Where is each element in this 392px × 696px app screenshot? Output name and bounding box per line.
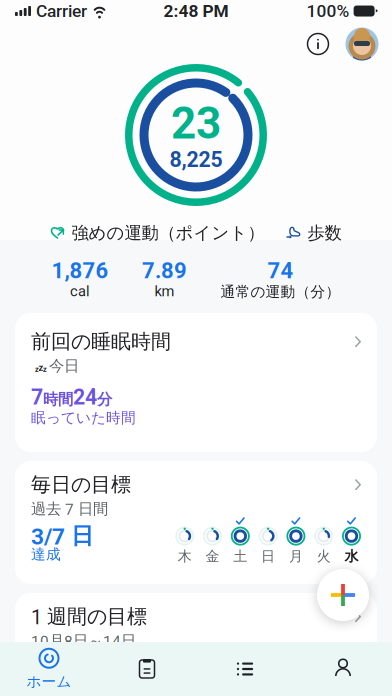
staticText: 23 [171, 98, 221, 149]
staticText: 火 [317, 548, 331, 565]
staticText: 歩数 [307, 222, 341, 244]
staticText: 日 [261, 548, 275, 565]
staticText: 水 [344, 548, 358, 565]
button[interactable]: Browse [196, 642, 294, 696]
staticText: 前回の睡眠時間 [31, 329, 171, 354]
button[interactable]: Profile [294, 642, 392, 696]
staticText: z [43, 365, 47, 374]
staticText: 24 [73, 385, 97, 410]
staticText: 月 [289, 548, 303, 565]
staticText: 2:48 PM [163, 1, 228, 21]
button[interactable]: ホーム [0, 642, 98, 696]
staticText: 金 [205, 548, 219, 565]
button[interactable]: 前回の睡眠時間 [15, 313, 377, 452]
staticText: 木 [178, 548, 192, 565]
staticText: 1 週間の目標 [31, 604, 147, 629]
staticText: 74 [267, 258, 293, 284]
staticText: 7.89 [142, 258, 187, 284]
staticText: 時間 [43, 390, 73, 409]
staticText: 毎日の目標 [31, 472, 131, 497]
staticText: 過去 7 日間 [31, 499, 108, 519]
button[interactable]: Add [313, 565, 373, 625]
staticText: 7 [31, 385, 43, 410]
staticText: 3/7 日 [31, 522, 94, 550]
button[interactable]: 1 週間の目標 [15, 593, 377, 696]
staticText: 達成 [31, 545, 61, 564]
staticText: 分 [97, 390, 112, 409]
staticText: 今日 [49, 356, 79, 376]
staticText: km [154, 283, 174, 300]
staticText: 土 [233, 548, 247, 565]
staticText: z [35, 365, 39, 374]
button[interactable]: Journal [98, 642, 196, 696]
staticText: 10月8日～14日 [31, 631, 136, 651]
button[interactable]: Info [296, 22, 340, 66]
staticText: 通常の運動（分） [220, 283, 340, 301]
staticText: 8,225 [169, 147, 222, 172]
staticText: z [38, 362, 43, 373]
staticText: 100% [307, 1, 350, 21]
staticText: 眠っていた時間 [31, 409, 136, 427]
staticText: 1,876 [51, 258, 108, 284]
button[interactable]: 毎日の目標 [15, 461, 377, 584]
staticText: cal [70, 283, 90, 300]
staticText: ホーム [26, 672, 71, 691]
button[interactable]: Account [340, 22, 384, 66]
staticText: 強めの運動（ポイント） [71, 222, 264, 244]
staticText: Carrier [36, 1, 87, 21]
